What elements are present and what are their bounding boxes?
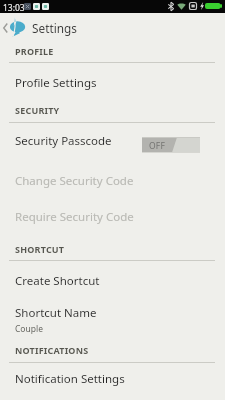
staticText: Settings bbox=[32, 20, 77, 36]
staticText: Security Passcode bbox=[15, 133, 112, 149]
button[interactable] bbox=[0, 293, 225, 337]
button[interactable] bbox=[0, 123, 225, 159]
button[interactable]: Security Passcode, off bbox=[142, 137, 200, 153]
staticText: OFF bbox=[149, 140, 166, 152]
staticText: 13:03 bbox=[3, 2, 25, 14]
staticText: SECURITY bbox=[15, 104, 60, 116]
button[interactable] bbox=[0, 261, 225, 293]
staticText: Change Security Code bbox=[15, 173, 134, 189]
staticText: SHORTCUT bbox=[15, 243, 65, 255]
button[interactable] bbox=[0, 195, 225, 231]
staticText: Require Security Code bbox=[15, 209, 134, 225]
button[interactable] bbox=[0, 63, 225, 101]
staticText: Create Shortcut bbox=[15, 273, 100, 289]
staticText: Couple bbox=[15, 323, 43, 335]
staticText: Profile Settings bbox=[15, 75, 97, 91]
staticText: Notification Settings bbox=[15, 371, 125, 387]
button[interactable] bbox=[0, 159, 225, 195]
button[interactable] bbox=[0, 363, 225, 397]
button[interactable]: Navigate up bbox=[0, 14, 30, 38]
staticText: Shortcut Name bbox=[15, 305, 97, 321]
staticText: NOTIFICATIONS bbox=[15, 344, 89, 356]
staticText: PROFILE bbox=[15, 45, 54, 57]
